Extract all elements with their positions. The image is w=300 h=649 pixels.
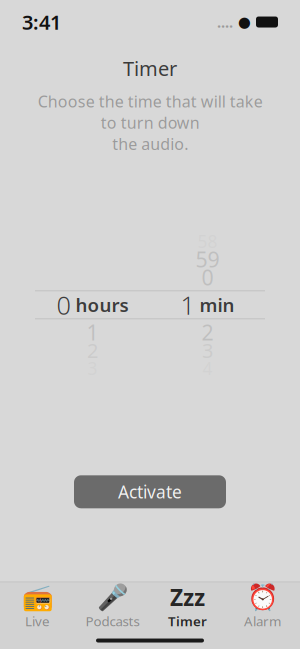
staticText: hours [75,292,128,317]
staticText: 59 [195,245,219,273]
staticText: 3:41 [22,9,61,35]
button[interactable]: Activate [74,475,226,508]
staticText: ⏰ [246,583,278,612]
staticText: 0 [56,288,70,322]
staticText: 1 [86,318,98,346]
staticText: Live [25,612,50,630]
staticText: Activate [118,480,182,503]
staticText: Podcasts [85,612,139,630]
staticText: Timer [123,55,177,82]
staticText: 1 [180,288,194,322]
button[interactable]: 📻 [0,579,75,634]
staticText: 2 [201,318,213,346]
staticText: Choose the time that will take to turn d… [37,91,262,154]
staticText: 2 [87,337,98,364]
staticText: Zᴢᴢ [170,582,205,612]
button[interactable]: 🎤 [75,579,150,634]
staticText: .... [217,12,233,32]
button[interactable]: ⏰ [225,579,300,634]
staticText: 📻 [21,583,53,612]
staticText: Timer [168,612,207,630]
staticText: 58 [197,230,217,253]
staticText: 🎤 [96,583,128,612]
staticText: 3 [202,337,213,364]
staticText: Alarm [244,612,281,630]
button[interactable]: Zᴢᴢ [150,579,225,634]
staticText: 0 [201,263,213,291]
staticText: ● [238,14,251,30]
staticText: min [199,292,234,317]
